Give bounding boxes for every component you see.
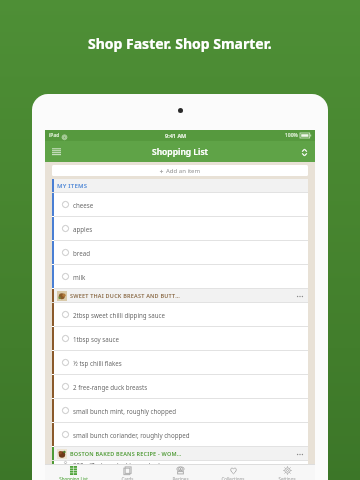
button[interactable]: More options	[294, 290, 306, 302]
staticText: small bunch coriander, roughly chopped	[73, 431, 190, 439]
staticText: Shop Faster. Shop Smarter.	[88, 34, 272, 53]
button[interactable]: 2 free-range duck breasts	[52, 375, 308, 398]
staticText: apples	[73, 225, 93, 233]
staticText: 1tbsp soy sauce	[73, 335, 120, 343]
button[interactable]: Cards	[102, 466, 152, 480]
button[interactable]: BOSTON BAKED BEANS RECIPE - WOMAN AND HO…	[52, 447, 308, 460]
staticText: ½ tsp chilli flakes	[73, 359, 122, 367]
staticText: Collections	[221, 476, 245, 480]
button[interactable]: MY ITEMS	[52, 179, 308, 192]
staticText: cheese	[73, 201, 94, 209]
staticText: Cards	[121, 476, 134, 480]
staticText: 9:41 AM	[165, 132, 187, 139]
staticText: milk	[73, 273, 86, 281]
button[interactable]: More options	[294, 448, 306, 460]
staticText: Shopping List	[59, 476, 88, 480]
button[interactable]: 200g (7oz) smoked bacon lardons	[52, 461, 308, 464]
button[interactable]: bread	[52, 241, 308, 264]
staticText: iPad	[49, 132, 60, 139]
button[interactable]: milk	[52, 265, 308, 288]
button[interactable]: Shopping List	[48, 466, 98, 480]
button[interactable]: 2tbsp sweet chilli dipping sauce	[52, 303, 308, 326]
button[interactable]: Recipes	[155, 466, 205, 480]
button[interactable]: Add an item	[52, 165, 308, 176]
staticText: 100%	[285, 132, 298, 139]
staticText: 2tbsp sweet chilli dipping sauce	[73, 311, 165, 319]
button[interactable]: Collections	[208, 466, 258, 480]
button[interactable]: SWEET THAI DUCK BREAST AND BUTTERNUT SAL…	[52, 289, 308, 302]
button[interactable]: apples	[52, 217, 308, 240]
button[interactable]: cheese	[52, 193, 308, 216]
staticText: SWEET THAI DUCK BREAST AND BUTTERNUT SAL…	[70, 292, 182, 299]
staticText: MY ITEMS	[57, 182, 88, 190]
button[interactable]: 1tbsp soy sauce	[52, 327, 308, 350]
staticText: Add an item	[166, 167, 201, 175]
button[interactable]: small bunch mint, roughly chopped	[52, 399, 308, 422]
staticText: Recipes	[172, 476, 189, 480]
staticText: 2 free-range duck breasts	[73, 383, 148, 391]
button[interactable]: small bunch coriander, roughly chopped	[52, 423, 308, 446]
button[interactable]: Sort	[297, 145, 311, 159]
staticText: small bunch mint, roughly chopped	[73, 407, 177, 415]
button[interactable]: ½ tsp chilli flakes	[52, 351, 308, 374]
button[interactable]: Menu	[49, 145, 63, 159]
staticText: Shopping List	[152, 146, 209, 158]
staticText: bread	[73, 249, 91, 257]
staticText: BOSTON BAKED BEANS RECIPE - WOMAN AND HO…	[70, 450, 182, 457]
button[interactable]: Settings	[262, 466, 312, 480]
staticText: Settings	[278, 476, 296, 480]
staticText: 200g (7oz) smoked bacon lardons	[73, 461, 171, 464]
